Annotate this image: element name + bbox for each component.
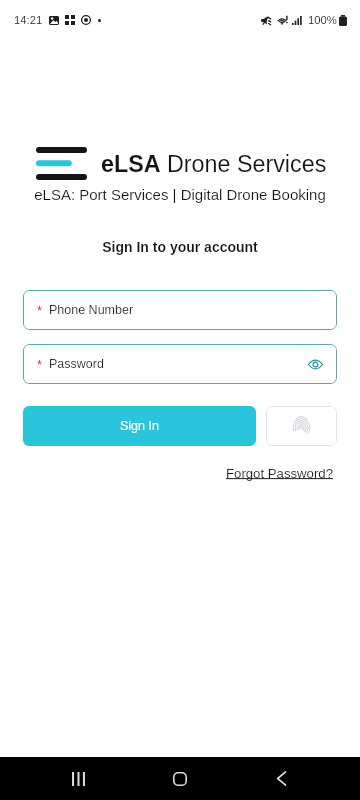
- staticText: Forgot Password?: [226, 466, 334, 481]
- button[interactable]: Home: [156, 757, 204, 800]
- staticText: Sign In to your account: [102, 239, 258, 255]
- staticText: *: [37, 357, 43, 372]
- staticText: 100%: [308, 14, 337, 27]
- button[interactable]: *: [23, 290, 337, 330]
- staticText: Sign In: [120, 419, 159, 433]
- button[interactable]: *: [23, 344, 337, 384]
- staticText: Password: [49, 357, 104, 371]
- button[interactable]: Forgot Password?: [226, 466, 334, 481]
- button[interactable]: Recent apps: [54, 757, 102, 800]
- staticText: Phone Number: [49, 303, 134, 317]
- button[interactable]: Sign in with fingerprint: [266, 406, 337, 446]
- staticText: *: [37, 303, 43, 318]
- staticText: eLSA Drone Services: [101, 151, 327, 177]
- button[interactable]: Back: [257, 757, 305, 800]
- button[interactable]: Sign In: [23, 406, 256, 446]
- other: Show password: [308, 359, 323, 370]
- staticText: eLSA: Port Services | Digital Drone Book…: [34, 186, 326, 203]
- staticText: 14:21: [14, 14, 43, 27]
